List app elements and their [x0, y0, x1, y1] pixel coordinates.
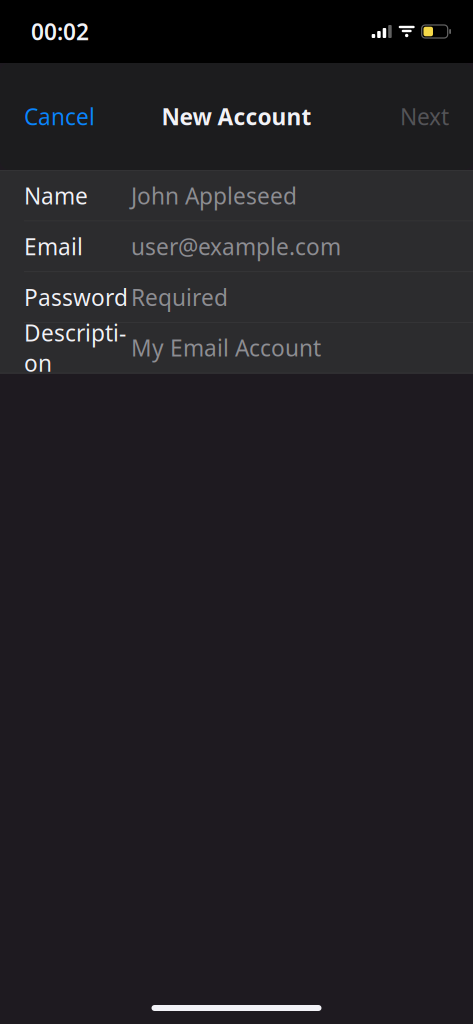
staticText: Name	[24, 181, 88, 211]
staticText: New Account	[161, 101, 311, 131]
staticText: user@example.com	[131, 231, 341, 261]
button[interactable]: Next	[376, 88, 473, 144]
button[interactable]: Cancel	[0, 88, 119, 144]
staticText: 00:02	[31, 16, 89, 46]
staticText: Email	[24, 231, 83, 261]
staticText: Description	[24, 318, 126, 378]
button[interactable]: Name	[0, 171, 473, 221]
button[interactable]: Email	[0, 221, 473, 271]
button[interactable]: Password	[0, 272, 473, 322]
staticText: Password	[24, 282, 128, 312]
button[interactable]: Description	[0, 323, 473, 373]
staticText: My Email Account	[131, 333, 321, 363]
staticText: John Appleseed	[131, 181, 297, 211]
staticText: Next	[400, 101, 449, 131]
staticText: Required	[131, 282, 228, 312]
staticText: Cancel	[24, 101, 95, 131]
